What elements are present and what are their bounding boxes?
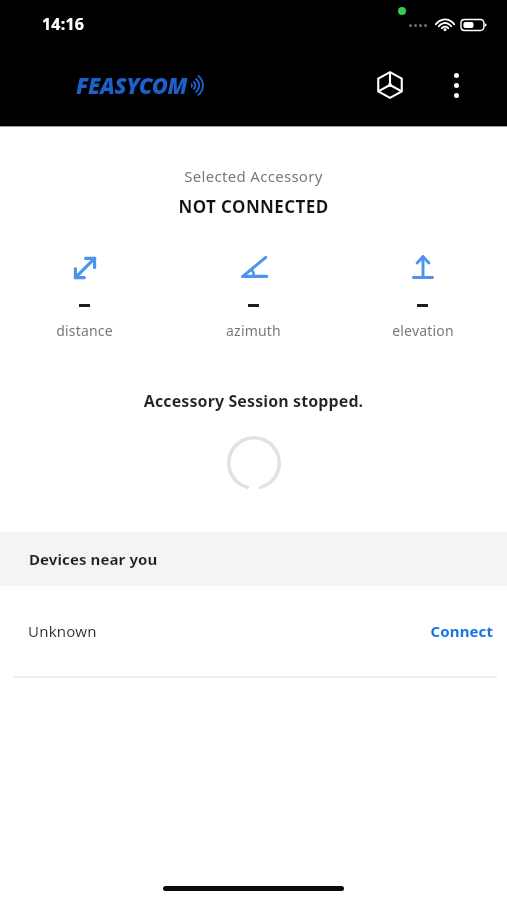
staticText: Connect [430,621,493,641]
button[interactable]: Unknown [0,586,507,676]
staticText: Unknown [28,621,97,641]
staticText: NOT CONNECTED [0,195,507,218]
staticText: Devices near you [29,549,158,569]
button[interactable]: elevation [338,249,507,340]
button[interactable]: Connect [416,611,507,651]
staticText: Accessory Session stopped. [0,390,507,412]
button[interactable]: distance [0,249,169,340]
button[interactable]: 3D view [373,68,407,102]
staticText: 14:16 [42,13,85,35]
staticText: distance [56,321,113,340]
button[interactable]: azimuth [169,249,338,340]
staticText: Selected Accessory [0,166,507,186]
button[interactable]: More options [439,68,473,102]
staticText: FEASYCOM [76,70,188,100]
staticText: azimuth [226,321,281,340]
staticText: elevation [392,321,454,340]
